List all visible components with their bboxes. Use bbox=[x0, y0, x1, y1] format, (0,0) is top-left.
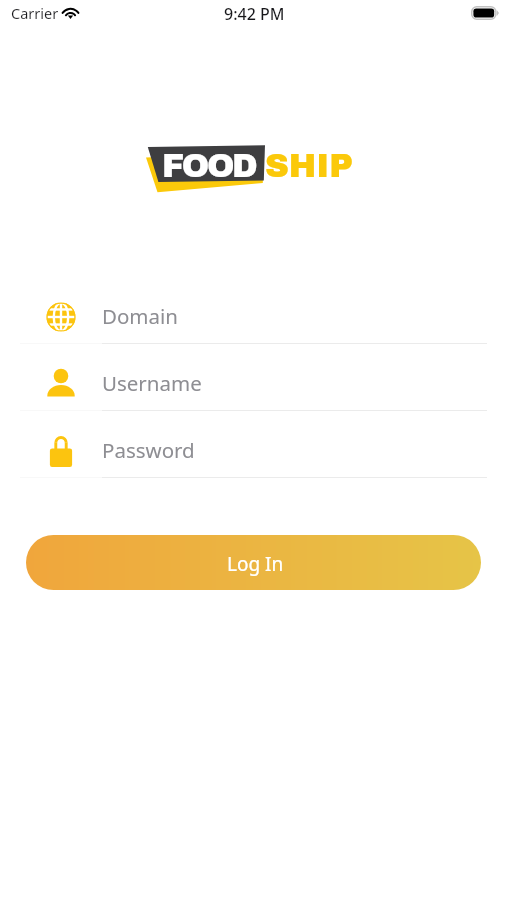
staticText: Username bbox=[102, 369, 202, 397]
button[interactable]: Username bbox=[0, 345, 507, 411]
staticText: SHIP bbox=[265, 148, 353, 184]
button[interactable]: Log In bbox=[26, 535, 481, 590]
other: Username bbox=[45, 368, 77, 400]
staticText: 9:42 PM bbox=[224, 3, 285, 25]
button[interactable]: Domain bbox=[0, 278, 507, 344]
staticText: Domain bbox=[102, 302, 178, 330]
button[interactable]: Password bbox=[0, 412, 507, 478]
staticText: Carrier bbox=[11, 3, 59, 23]
other: Domain bbox=[45, 301, 77, 333]
staticText: Password bbox=[102, 436, 195, 464]
other: Password bbox=[45, 435, 77, 467]
staticText: Log In bbox=[227, 551, 284, 577]
staticText: FOOD bbox=[162, 148, 256, 184]
